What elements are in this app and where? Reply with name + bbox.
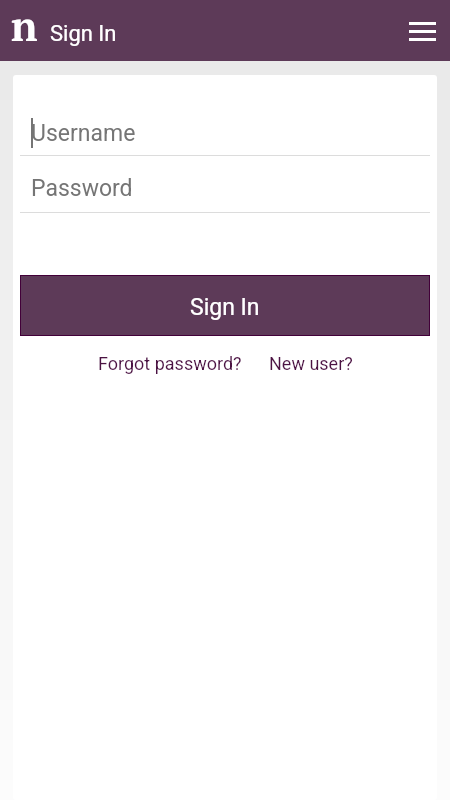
staticText: Username xyxy=(31,120,136,147)
button[interactable]: Menu xyxy=(397,0,447,61)
button[interactable]: Sign In xyxy=(21,276,429,335)
staticText: Sign In xyxy=(50,21,117,47)
staticText: Password xyxy=(31,175,133,202)
button[interactable]: Password xyxy=(20,171,430,213)
button[interactable]: New user? xyxy=(267,347,355,380)
staticText: New user? xyxy=(269,353,353,374)
button[interactable]: Forgot password? xyxy=(96,347,244,380)
staticText: Sign In xyxy=(190,294,260,321)
staticText: n xyxy=(11,0,38,44)
staticText: Forgot password? xyxy=(98,353,242,374)
button[interactable]: Username xyxy=(20,116,430,156)
